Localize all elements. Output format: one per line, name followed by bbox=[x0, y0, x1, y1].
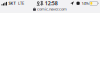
button[interactable]: Address bbox=[0, 7, 100, 13]
staticText: 14% bbox=[81, 1, 88, 6]
staticText: 12:58 bbox=[45, 0, 58, 7]
staticText: LTE bbox=[18, 1, 24, 6]
staticText: comic.naver.com bbox=[37, 6, 67, 11]
staticText: SKT bbox=[8, 1, 15, 6]
